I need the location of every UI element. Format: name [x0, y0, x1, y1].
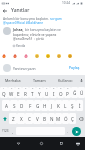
button[interactable]: H: [41, 100, 48, 111]
button[interactable]: Emoji reaction: [1, 53, 7, 59]
staticText: N: [50, 116, 54, 122]
staticText: Yanıtla: [16, 44, 26, 48]
staticText: H: [43, 103, 47, 109]
staticText: 4: [25, 87, 27, 90]
staticText: Kullanıcı: [58, 78, 73, 83]
staticText: Ç: [71, 116, 74, 122]
button[interactable]: 0: [64, 87, 71, 98]
button[interactable]: Emoji reaction: [67, 53, 73, 59]
staticText: L: [64, 103, 67, 109]
button[interactable]: 4: [22, 87, 29, 98]
staticText: O: [59, 91, 63, 97]
button[interactable]: X: [17, 113, 25, 124]
staticText: Anlamlı bir konuşma başlatın.: [3, 16, 50, 20]
staticText: D: [20, 103, 24, 109]
button[interactable]: S: [10, 100, 18, 111]
staticText: V: [36, 116, 39, 122]
button[interactable]: 6: [36, 87, 43, 98]
staticText: C: [28, 116, 31, 122]
staticText: A: [5, 103, 8, 109]
button[interactable]: J: [48, 100, 55, 111]
button[interactable]: Emoji reaction: [12, 53, 18, 59]
button[interactable]: M: [55, 113, 62, 124]
button[interactable]: Kullanıcı: [52, 75, 78, 86]
button[interactable]: Back: [1, 7, 9, 15]
button[interactable]: Ü: [78, 87, 85, 98]
staticText: G: [36, 103, 40, 109]
staticText: 0: [67, 87, 69, 90]
staticText: Ö: [64, 116, 68, 122]
button[interactable]: B: [41, 113, 48, 124]
staticText: İ: [79, 103, 81, 109]
button[interactable]: V: [33, 113, 41, 124]
button[interactable]: Ç: [69, 113, 76, 124]
button[interactable]: Ğ: [71, 87, 78, 98]
button[interactable]: 3: [15, 87, 22, 98]
staticText: M: [56, 116, 61, 122]
staticText: J: [51, 103, 53, 109]
staticText: ,: [12, 129, 14, 134]
button[interactable]: 8: [50, 87, 57, 98]
button[interactable]: Hide keyboard: [73, 139, 82, 148]
button[interactable]: D: [18, 100, 26, 111]
button[interactable]: Merhaba: [0, 75, 26, 86]
staticText: Tamam: [33, 78, 46, 83]
button[interactable]: Ş: [69, 100, 76, 111]
staticText: E: [17, 91, 20, 97]
button[interactable]: Emoji reaction: [56, 53, 62, 59]
staticText: 9: [60, 87, 62, 90]
button[interactable]: K: [55, 100, 62, 111]
button[interactable]: C: [25, 113, 33, 124]
button[interactable]: Emoji reaction: [45, 53, 51, 59]
button[interactable]: Paylaş: [67, 64, 82, 71]
staticText: .: [67, 129, 69, 134]
button[interactable]: Tamam: [26, 75, 52, 86]
button[interactable]: Emoji reaction: [34, 53, 40, 59]
staticText: Yanıtınızı yazın: [13, 66, 67, 70]
staticText: W: [9, 91, 14, 97]
button[interactable]: L: [62, 100, 69, 111]
staticText: ?123: [2, 129, 9, 133]
staticText: 8: [53, 87, 55, 90]
button[interactable]: F: [26, 100, 34, 111]
staticText: Ü: [80, 90, 84, 96]
staticText: 1: [3, 87, 5, 90]
staticText: I: [53, 91, 55, 97]
staticText: Z: [12, 116, 15, 122]
button[interactable]: G: [34, 100, 41, 111]
staticText: sorgam: [50, 16, 62, 20]
button[interactable]: Home: [37, 139, 46, 148]
staticText: X: [20, 116, 23, 122]
staticText: S: [13, 103, 16, 109]
staticText: Johaa,: [13, 27, 24, 32]
button[interactable]: Backspace: [76, 112, 85, 125]
staticText: Q: [2, 91, 6, 97]
staticText: U: [45, 91, 49, 97]
staticText: Paylaş: [69, 65, 80, 70]
button[interactable]: Z: [9, 113, 17, 124]
button[interactable]: Voice input: [78, 75, 85, 86]
staticText: 5: [32, 87, 34, 90]
staticText: F: [29, 103, 32, 109]
button[interactable]: Send: [70, 125, 82, 137]
button[interactable]: 5: [29, 87, 36, 98]
button[interactable]: Emoji reaction: [23, 53, 29, 59]
button[interactable]: Back: [14, 139, 23, 148]
button[interactable]: ?123: [0, 125, 10, 137]
button[interactable]: 1: [0, 87, 8, 98]
staticText: başardınız, elinizle ve yaparız: [13, 33, 57, 37]
staticText: bir konuşma başlatın ve: [25, 28, 61, 32]
button[interactable]: 9: [57, 87, 64, 98]
button[interactable]: N: [48, 113, 55, 124]
button[interactable]: İ: [76, 100, 83, 111]
button[interactable]: Ö: [62, 113, 69, 124]
button[interactable]: .: [65, 125, 70, 137]
button[interactable]: Shift: [0, 112, 9, 125]
button[interactable]: 2: [8, 87, 15, 98]
button[interactable]: ,: [10, 125, 16, 137]
button[interactable]: 7: [43, 87, 50, 98]
button[interactable]: Recent apps: [57, 139, 66, 148]
staticText: 10:24: [62, 1, 71, 5]
button[interactable]: A: [2, 100, 10, 111]
